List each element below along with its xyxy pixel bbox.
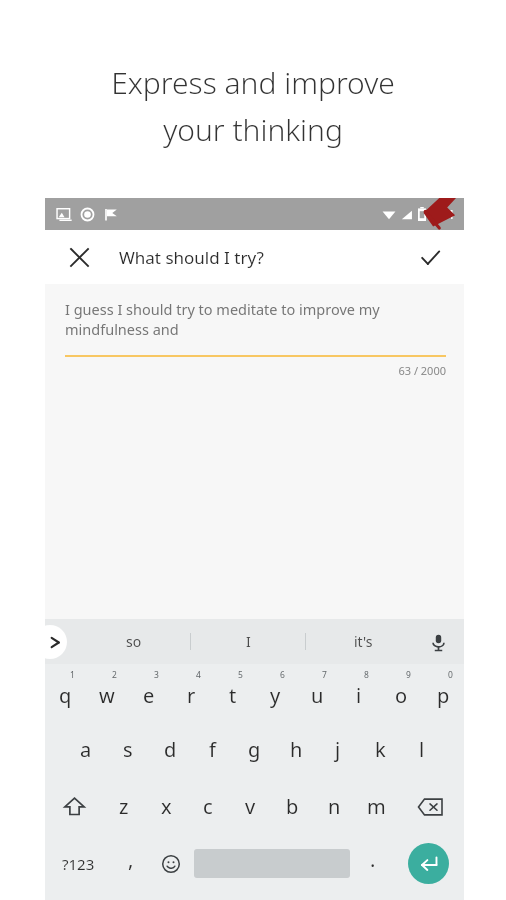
staticText: m — [367, 793, 386, 820]
button[interactable]: l — [401, 721, 443, 778]
button[interactable]: z — [103, 778, 145, 835]
button[interactable]: Shift — [45, 778, 103, 835]
staticText: b — [286, 793, 299, 820]
button[interactable]: 2 — [86, 664, 128, 721]
staticText: c — [203, 793, 213, 820]
button[interactable]: I — [191, 619, 305, 664]
staticText: f — [209, 736, 216, 763]
staticText: p — [437, 682, 450, 709]
staticText: e — [143, 682, 155, 709]
staticText: it's — [354, 632, 373, 651]
staticText: 1 — [70, 669, 75, 681]
staticText: 4 — [196, 669, 201, 681]
button[interactable]: j — [317, 721, 359, 778]
button[interactable]: 1 — [45, 664, 86, 721]
staticText: 9 — [406, 669, 411, 681]
staticText: , — [128, 846, 134, 873]
button[interactable]: Save — [408, 235, 452, 279]
staticText: w — [99, 682, 115, 709]
staticText: What should I try? — [119, 246, 264, 269]
staticText: . — [370, 846, 376, 873]
staticText: I guess I should try to meditate to impr… — [65, 299, 446, 340]
button[interactable]: n — [313, 778, 355, 835]
button[interactable]: 6 — [254, 664, 296, 721]
staticText: your thinking — [163, 109, 343, 150]
button[interactable]: 5 — [212, 664, 254, 721]
button[interactable]: I guess I should try to meditate to impr… — [45, 284, 464, 619]
button[interactable]: Emoji — [151, 835, 191, 892]
button[interactable]: 4 — [170, 664, 212, 721]
button[interactable]: Voice input — [420, 624, 456, 660]
staticText: g — [248, 736, 261, 763]
staticText: r — [187, 682, 196, 709]
button[interactable]: it's — [306, 619, 420, 664]
button[interactable]: 3 — [128, 664, 170, 721]
button[interactable]: 0 — [422, 664, 464, 721]
staticText: 2 — [112, 669, 117, 681]
staticText: t — [229, 682, 237, 709]
button[interactable]: so — [77, 619, 190, 664]
button[interactable]: 9 — [380, 664, 422, 721]
staticText: 3:51 — [431, 206, 455, 222]
staticText: 0 — [448, 669, 453, 681]
button[interactable]: More suggestions — [33, 625, 67, 659]
staticText: a — [80, 736, 92, 763]
staticText: x — [161, 793, 172, 820]
staticText: 7 — [322, 669, 327, 681]
button[interactable]: s — [107, 721, 149, 778]
staticText: 3 — [154, 669, 159, 681]
staticText: q — [59, 682, 72, 709]
staticText: z — [119, 793, 129, 820]
button[interactable]: a — [65, 721, 107, 778]
staticText: I — [246, 632, 251, 651]
staticText: 6 — [280, 669, 285, 681]
staticText: s — [123, 736, 133, 763]
staticText: v — [245, 793, 256, 820]
staticText: u — [311, 682, 324, 709]
staticText: k — [375, 736, 386, 763]
button[interactable]: 8 — [338, 664, 380, 721]
button[interactable]: . — [353, 835, 393, 892]
staticText: l — [419, 736, 425, 763]
button[interactable]: k — [359, 721, 401, 778]
button[interactable]: d — [149, 721, 191, 778]
staticText: 5 — [238, 669, 243, 681]
staticText: i — [356, 682, 362, 709]
button[interactable]: f — [191, 721, 233, 778]
button[interactable]: Close — [57, 235, 101, 279]
staticText: 63 / 2000 — [65, 363, 446, 378]
staticText: 8 — [364, 669, 369, 681]
staticText: Express and improve — [111, 62, 395, 103]
staticText: y — [270, 682, 281, 709]
button[interactable]: x — [145, 778, 187, 835]
staticText: ?123 — [62, 854, 95, 874]
staticText: h — [290, 736, 303, 763]
button[interactable]: v — [229, 778, 271, 835]
staticText: n — [328, 793, 341, 820]
staticText: d — [164, 736, 177, 763]
staticText: j — [335, 736, 341, 763]
staticText: so — [126, 632, 142, 651]
button[interactable]: h — [275, 721, 317, 778]
button[interactable]: c — [187, 778, 229, 835]
button[interactable]: Backspace — [397, 778, 464, 835]
button[interactable]: ?123 — [45, 835, 111, 892]
button[interactable]: , — [111, 835, 151, 892]
button[interactable]: g — [233, 721, 275, 778]
button[interactable]: b — [271, 778, 313, 835]
button[interactable]: Enter — [393, 835, 464, 892]
button[interactable]: Space — [191, 835, 353, 892]
button[interactable]: m — [355, 778, 397, 835]
button[interactable]: 7 — [296, 664, 338, 721]
staticText: o — [395, 682, 408, 709]
